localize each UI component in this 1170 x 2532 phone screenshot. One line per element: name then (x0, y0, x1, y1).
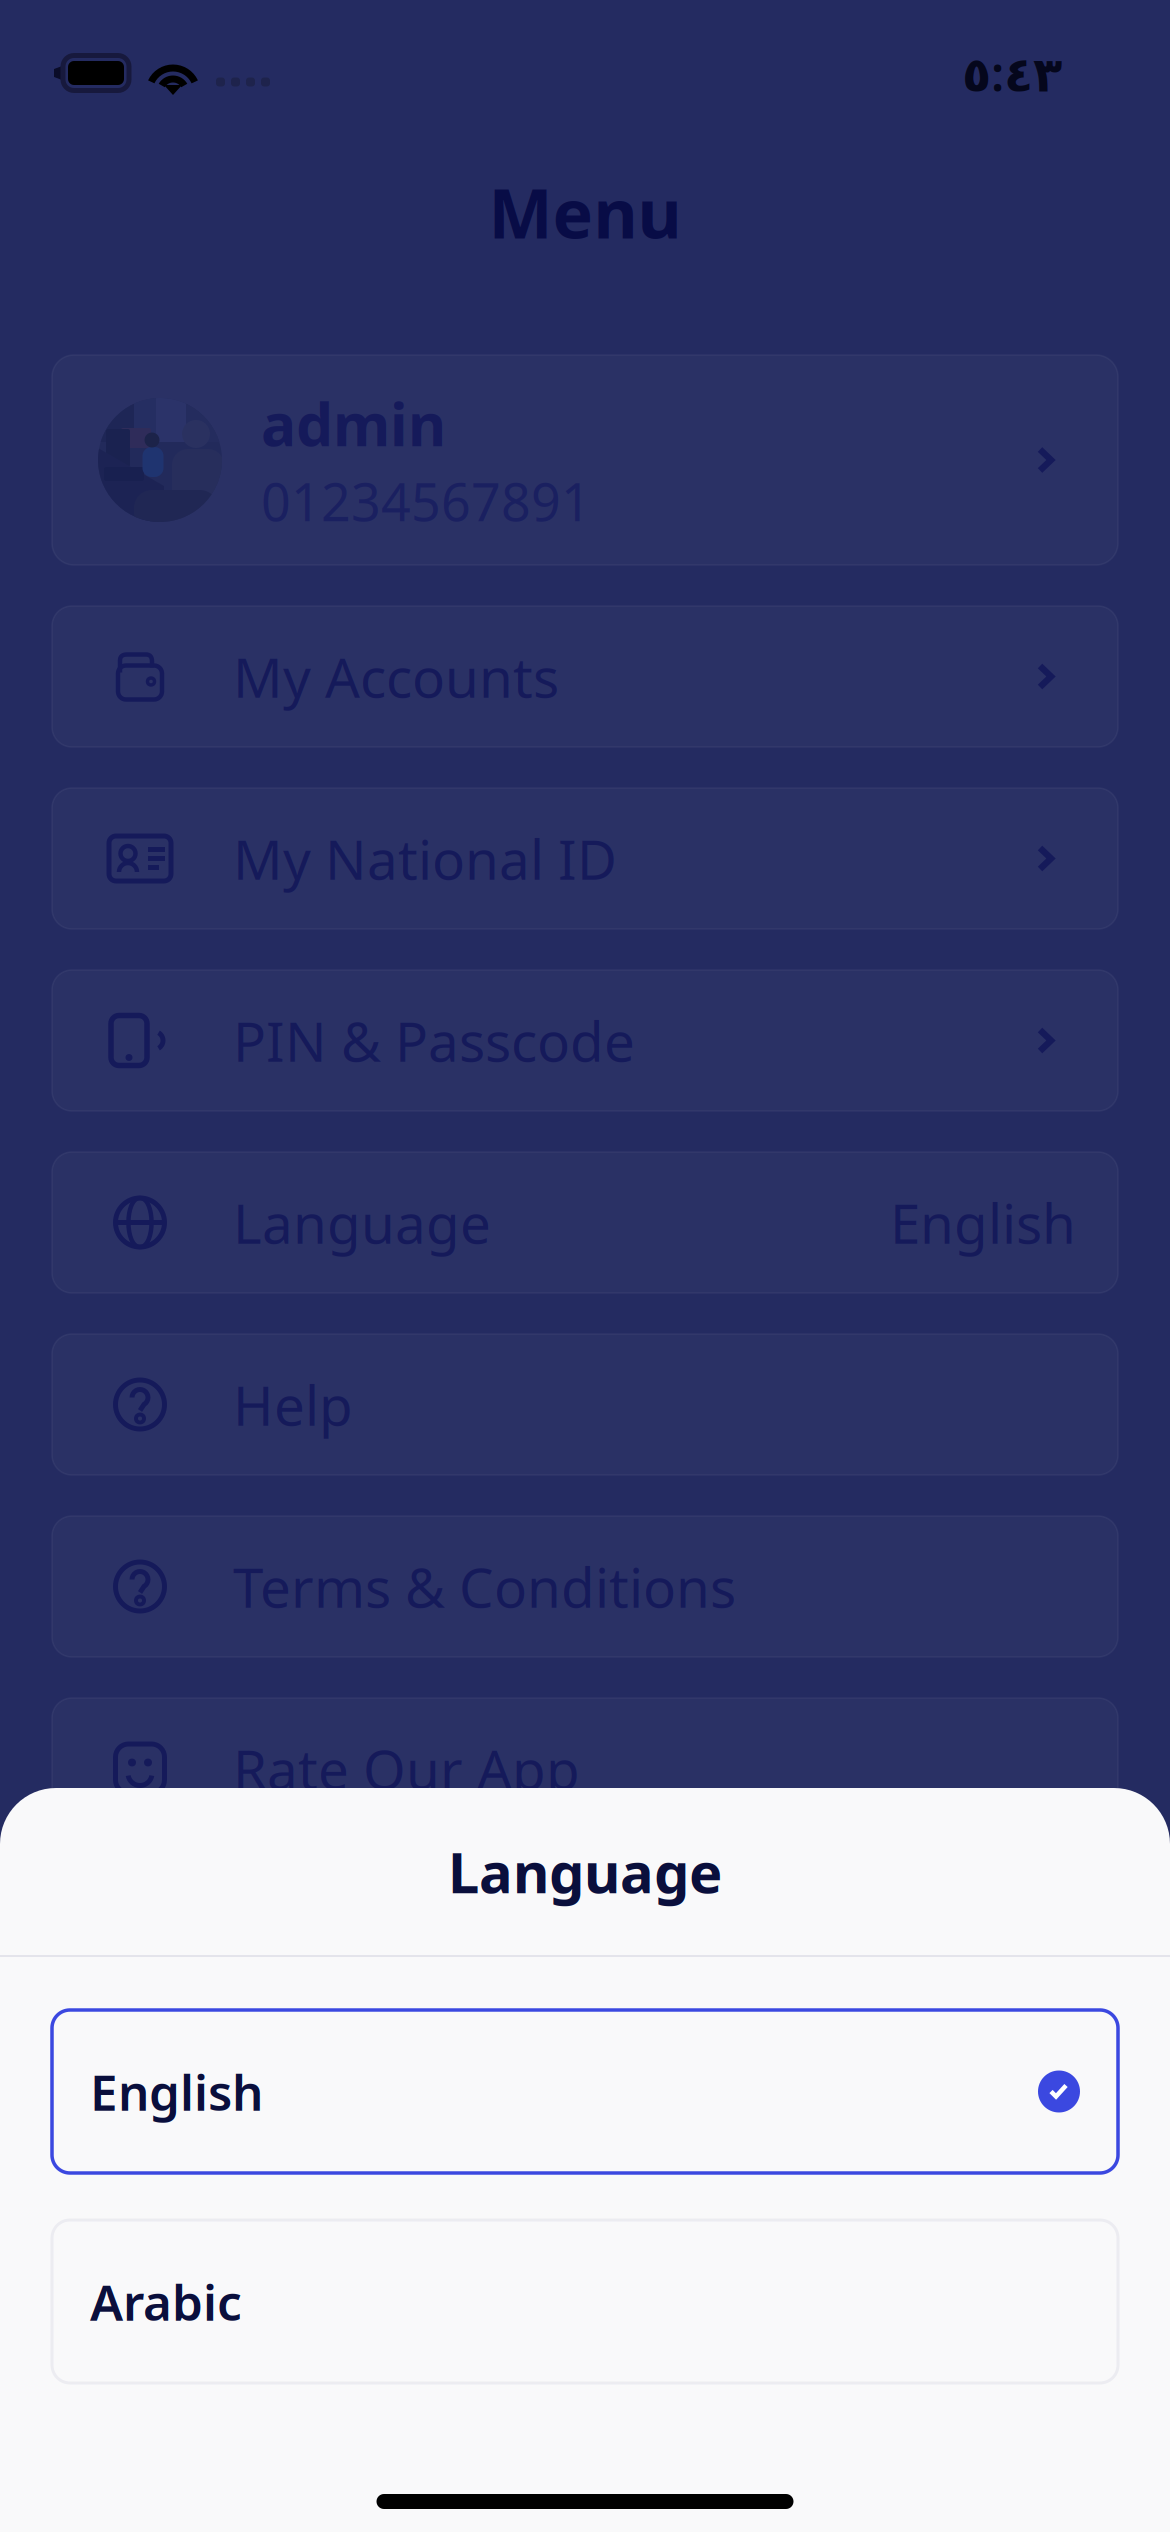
button[interactable]: Arabic (52, 2220, 1118, 2383)
staticText: English (90, 2059, 263, 2124)
staticText: Help (233, 1368, 353, 1441)
staticText: Arabic (90, 2269, 242, 2334)
button[interactable]: admin (52, 355, 1118, 565)
staticText: Language (233, 1186, 491, 1259)
staticText: Menu (488, 167, 681, 257)
button[interactable]: My National ID (52, 788, 1118, 929)
staticText: Language (448, 1834, 722, 1909)
staticText: English (890, 1186, 1076, 1259)
button[interactable]: Language (52, 1152, 1118, 1293)
button[interactable]: Help (52, 1334, 1118, 1475)
button[interactable]: PIN & Passcode (52, 970, 1118, 1111)
staticText: My Accounts (233, 640, 559, 713)
staticText: My National ID (233, 822, 617, 895)
button[interactable]: Rate Our App (52, 1698, 1118, 1839)
staticText: 01234567891 (261, 466, 591, 535)
button[interactable]: Terms & Conditions (52, 1516, 1118, 1657)
button[interactable]: My Accounts (52, 606, 1118, 747)
staticText: Rate Our App (233, 1732, 580, 1805)
staticText: admin (261, 384, 446, 462)
staticText: Terms & Conditions (233, 1550, 736, 1623)
staticText: PIN & Passcode (233, 1004, 635, 1077)
staticText: ٥:٤٣ (962, 41, 1062, 105)
button[interactable]: English (52, 2010, 1118, 2173)
